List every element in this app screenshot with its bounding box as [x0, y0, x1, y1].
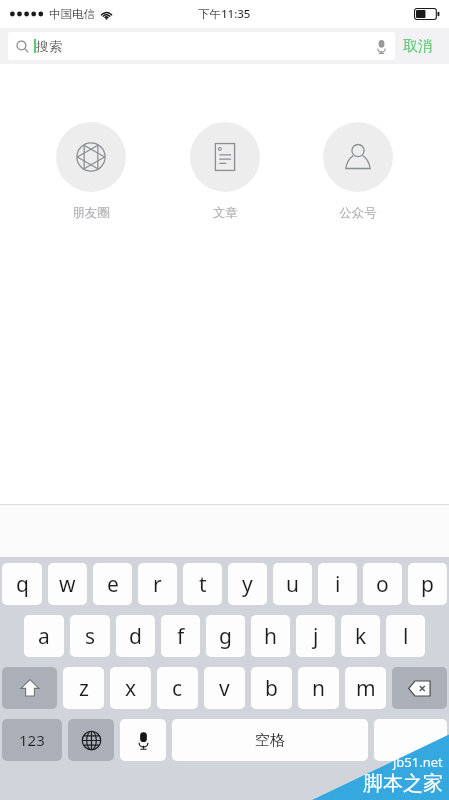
- button[interactable]: v: [204, 667, 245, 709]
- staticText: 公众号: [339, 205, 377, 221]
- staticText: w: [59, 570, 76, 599]
- button[interactable]: m: [345, 667, 386, 709]
- staticText: g: [219, 622, 232, 651]
- button[interactable]: j: [296, 615, 335, 657]
- button[interactable]: n: [298, 667, 339, 709]
- staticText: y: [242, 570, 253, 599]
- staticText: c: [172, 674, 183, 703]
- button[interactable]: Shift: [2, 667, 57, 709]
- staticText: d: [129, 622, 142, 651]
- button[interactable]: g: [206, 615, 245, 657]
- button[interactable]: q: [2, 563, 42, 605]
- button[interactable]: o: [363, 563, 402, 605]
- staticText: h: [264, 622, 277, 651]
- button[interactable]: l: [386, 615, 425, 657]
- staticText: 下午11:35: [198, 6, 251, 22]
- staticText: j: [313, 622, 319, 651]
- button[interactable]: w: [48, 563, 87, 605]
- button[interactable]: Change keyboard: [68, 719, 114, 761]
- button[interactable]: y: [228, 563, 267, 605]
- button[interactable]: e: [93, 563, 132, 605]
- staticText: 空格: [255, 731, 285, 750]
- button[interactable]: h: [251, 615, 290, 657]
- staticText: 中国电信: [49, 7, 95, 21]
- button[interactable]: b: [251, 667, 292, 709]
- staticText: v: [219, 674, 230, 703]
- staticText: e: [107, 570, 119, 599]
- staticText: k: [355, 622, 367, 651]
- staticText: l: [403, 622, 409, 651]
- staticText: 文章: [213, 205, 238, 221]
- button[interactable]: Search: [374, 719, 447, 761]
- staticText: s: [85, 622, 96, 651]
- button[interactable]: x: [110, 667, 151, 709]
- button[interactable]: Backspace: [392, 667, 447, 709]
- staticText: 朋友圈: [72, 205, 110, 221]
- staticText: u: [286, 570, 299, 599]
- staticText: m: [356, 674, 376, 703]
- staticText: 取消: [403, 37, 433, 56]
- button[interactable]: t: [183, 563, 222, 605]
- button[interactable]: 文章: [182, 120, 268, 223]
- button[interactable]: 空格: [172, 719, 368, 761]
- staticText: jb51.net: [393, 753, 443, 771]
- staticText: i: [335, 570, 341, 599]
- staticText: a: [38, 622, 50, 651]
- staticText: o: [376, 570, 389, 599]
- button[interactable]: a: [24, 615, 64, 657]
- button[interactable]: Dictation: [120, 719, 166, 761]
- staticText: z: [79, 674, 89, 703]
- button[interactable]: r: [138, 563, 177, 605]
- staticText: p: [421, 570, 434, 599]
- staticText: 搜索: [36, 38, 62, 54]
- button[interactable]: 公众号: [315, 120, 401, 223]
- button[interactable]: z: [63, 667, 104, 709]
- button[interactable]: 123: [2, 719, 62, 761]
- staticText: t: [199, 570, 207, 599]
- staticText: b: [265, 674, 278, 703]
- button[interactable]: 朋友圈: [48, 120, 134, 223]
- staticText: x: [125, 674, 137, 703]
- button[interactable]: d: [116, 615, 155, 657]
- button[interactable]: c: [157, 667, 198, 709]
- button[interactable]: i: [318, 563, 357, 605]
- staticText: n: [312, 674, 325, 703]
- button[interactable]: 搜索: [8, 32, 395, 60]
- staticText: q: [16, 570, 29, 599]
- staticText: r: [153, 570, 162, 599]
- button[interactable]: p: [408, 563, 447, 605]
- button[interactable]: f: [161, 615, 200, 657]
- button[interactable]: k: [341, 615, 380, 657]
- other: Voice search: [376, 39, 387, 54]
- staticText: 123: [19, 730, 45, 750]
- staticText: 脚本之家: [363, 771, 443, 796]
- button[interactable]: u: [273, 563, 312, 605]
- staticText: f: [177, 622, 185, 651]
- button[interactable]: s: [70, 615, 110, 657]
- button[interactable]: 取消: [395, 33, 441, 60]
